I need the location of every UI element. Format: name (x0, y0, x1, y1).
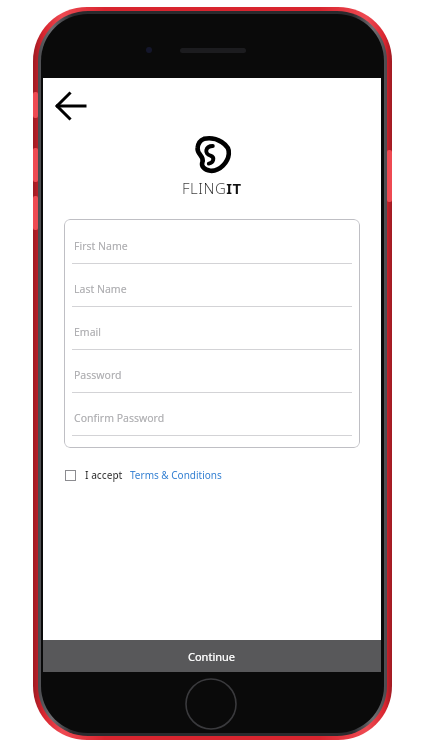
button[interactable]: Continue (43, 640, 381, 672)
button[interactable]: Back (49, 84, 93, 128)
staticText: Confirm Password (74, 411, 165, 425)
button[interactable]: Terms & Conditions (130, 468, 222, 482)
staticText: FLINGIT (182, 178, 242, 198)
staticText: First Name (74, 239, 128, 253)
staticText: Email (74, 325, 101, 339)
staticText: Last Name (74, 282, 127, 296)
staticText: Continue (188, 649, 236, 664)
staticText: I accept (85, 468, 123, 482)
staticText: Password (74, 368, 122, 382)
button[interactable]: Last Name (72, 272, 352, 306)
button[interactable]: First Name (72, 229, 352, 263)
button[interactable]: Email (72, 315, 352, 349)
button[interactable]: I accept (65, 462, 222, 488)
button[interactable]: Password (72, 358, 352, 392)
staticText: Terms & Conditions (130, 468, 222, 482)
button[interactable]: Confirm Password (72, 401, 352, 435)
